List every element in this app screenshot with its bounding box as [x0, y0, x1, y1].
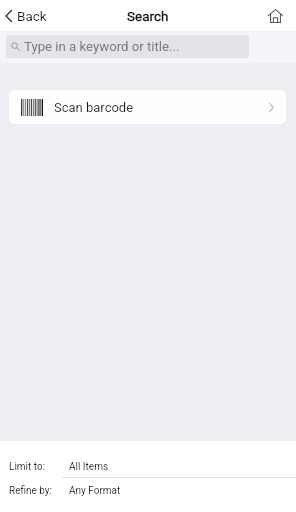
staticText: Search: [127, 8, 169, 24]
staticText: Limit to:: [9, 461, 46, 473]
button[interactable]: Limit to:: [0, 455, 296, 478]
button[interactable]: Home: [261, 0, 290, 31]
button[interactable]: Scan barcode: [9, 90, 286, 124]
button[interactable]: Back: [0, 0, 57, 31]
staticText: Refine by:: [9, 485, 53, 497]
staticText: Type in a keyword or title...: [24, 39, 180, 54]
staticText: Back: [17, 8, 47, 24]
staticText: Scan barcode: [54, 100, 134, 115]
button[interactable]: Type in a keyword or title...: [6, 35, 249, 58]
staticText: All Items: [69, 461, 109, 473]
staticText: Any Format: [69, 485, 121, 497]
button[interactable]: Refine by:: [0, 479, 296, 502]
